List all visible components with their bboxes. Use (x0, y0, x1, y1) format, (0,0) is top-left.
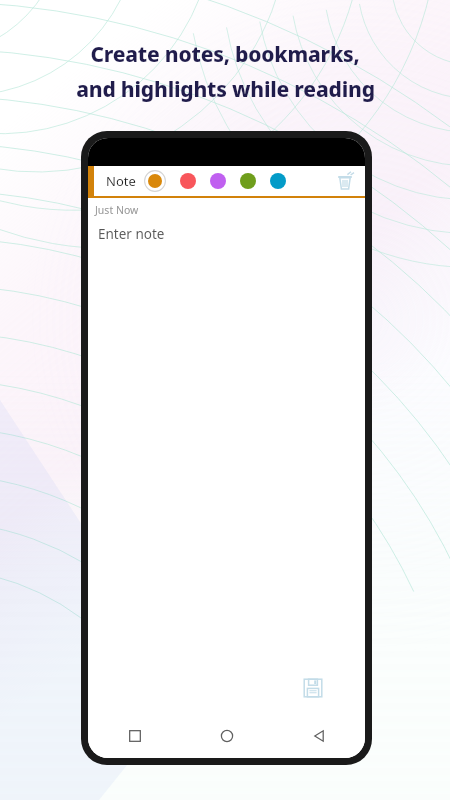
staticText: Just Now (95, 203, 139, 217)
staticText: Note (106, 172, 136, 190)
button[interactable]: Note (94, 172, 144, 190)
button[interactable]: Back (273, 714, 365, 758)
button[interactable]: Colour (240, 173, 256, 189)
button[interactable]: Save note (303, 678, 365, 714)
button[interactable]: Enter note (88, 225, 365, 243)
button[interactable]: Delete note (335, 171, 365, 191)
button[interactable]: Colour (180, 173, 196, 189)
button[interactable]: Colour (144, 170, 166, 192)
button[interactable]: Home (181, 714, 273, 758)
button[interactable]: Recents (88, 714, 181, 758)
button[interactable]: Colour (210, 173, 226, 189)
staticText: and highlights while reading (76, 75, 375, 104)
staticText: Enter note (98, 225, 165, 243)
staticText: Create notes, bookmarks, (90, 40, 360, 69)
button[interactable]: Colour (270, 173, 286, 189)
